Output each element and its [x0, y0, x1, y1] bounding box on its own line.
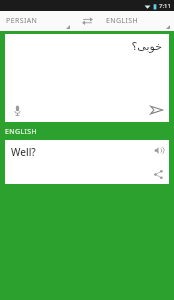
button[interactable]: Share [152, 168, 165, 181]
staticText: PERSIAN [6, 16, 38, 26]
button[interactable]: Well? [5, 140, 169, 184]
staticText: 7:11 [159, 2, 171, 10]
button[interactable]: Swap languages [74, 11, 100, 31]
button[interactable]: خوبی؟ [5, 34, 169, 122]
staticText: Well? [11, 145, 36, 159]
button[interactable]: Voice input [9, 102, 25, 118]
button[interactable]: Translate [148, 102, 164, 118]
staticText: ENGLISH [106, 16, 139, 26]
staticText: ENGLISH [5, 127, 38, 137]
button[interactable]: PERSIAN [0, 11, 74, 31]
button[interactable]: ENGLISH [100, 11, 174, 31]
staticText: خوبی؟ [131, 40, 162, 53]
button[interactable]: Listen [152, 144, 165, 157]
